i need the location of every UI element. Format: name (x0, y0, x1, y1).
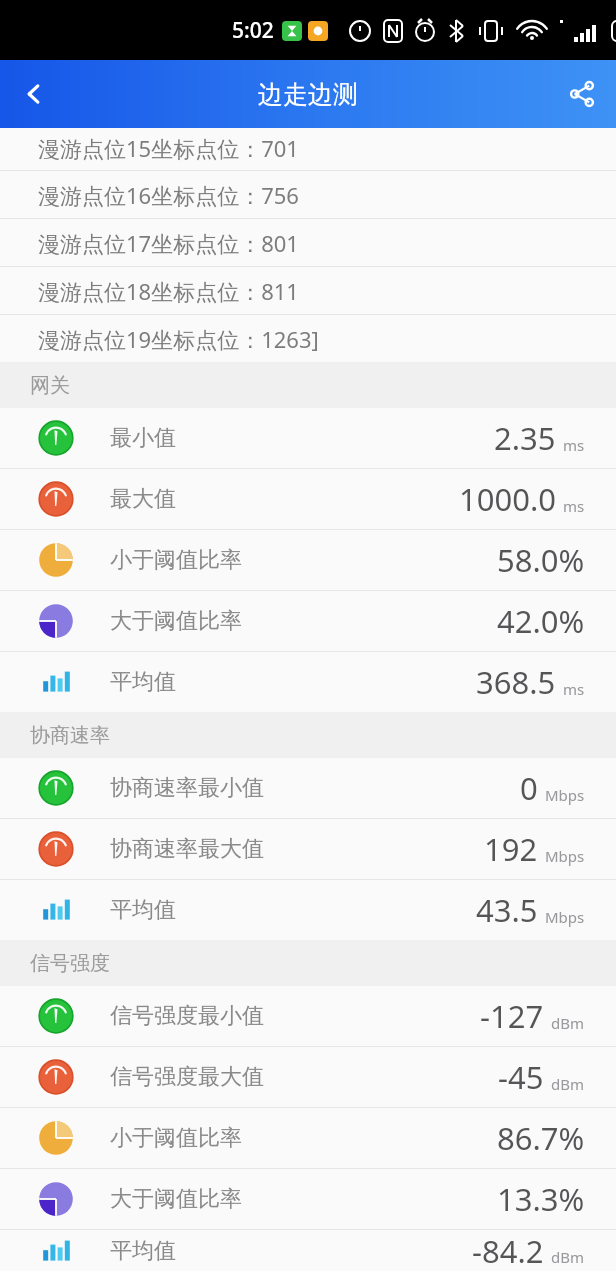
staticText: 平均值 (110, 668, 176, 696)
staticText: -84.2 (472, 1230, 544, 1271)
staticText: 漫游点位17坐标点位：801 (38, 228, 299, 258)
staticText: 大于阈值比率 (110, 1185, 242, 1213)
staticText: 192 (484, 828, 538, 870)
staticText: 1000.0 (459, 478, 556, 520)
staticText: 协商速率 (30, 723, 110, 748)
button[interactable]: Back (0, 60, 68, 128)
staticText: -127 (480, 995, 544, 1037)
button[interactable]: 最小值 (0, 408, 616, 468)
staticText: 86.7% (497, 1117, 585, 1159)
staticText: 最小值 (110, 424, 176, 452)
staticText: 信号强度 (30, 951, 110, 976)
staticText: dBm (551, 1013, 585, 1033)
staticText: 13.3% (497, 1178, 585, 1220)
button[interactable]: 小于阈值比率 (0, 1108, 616, 1168)
button[interactable]: 漫游点位19坐标点位：1263] (0, 315, 616, 362)
staticText: 2.35 (494, 417, 556, 459)
staticText: 368.5 (476, 661, 556, 703)
button[interactable]: 平均值 (0, 880, 616, 940)
staticText: ms (563, 435, 585, 455)
button[interactable]: 漫游点位18坐标点位：811 (0, 267, 616, 314)
staticText: 小于阈值比率 (110, 1124, 242, 1152)
button[interactable]: 协商速率最大值 (0, 819, 616, 879)
staticText: 网关 (30, 373, 70, 398)
staticText: 漫游点位19坐标点位：1263] (38, 324, 319, 354)
staticText: 信号强度最小值 (110, 1002, 264, 1030)
staticText: dBm (551, 1074, 585, 1094)
staticText: 5:02 (232, 16, 274, 45)
staticText: Mbps (545, 785, 585, 805)
staticText: 43.5 (476, 889, 538, 931)
staticText: ms (563, 496, 585, 516)
staticText: Mbps (545, 846, 585, 866)
staticText: 漫游点位18坐标点位：811 (38, 276, 299, 306)
staticText: ms (563, 679, 585, 699)
button[interactable]: 大于阈值比率 (0, 591, 616, 651)
staticText: 58.0% (497, 539, 585, 581)
staticText: 0 (520, 767, 538, 809)
staticText: 42.0% (497, 600, 585, 642)
button[interactable]: 大于阈值比率 (0, 1169, 616, 1229)
staticText: 小于阈值比率 (110, 546, 242, 574)
staticText: dBm (551, 1247, 585, 1267)
button[interactable]: Share (548, 60, 616, 128)
button[interactable]: 协商速率最小值 (0, 758, 616, 818)
button[interactable]: 平均值 (0, 652, 616, 712)
staticText: Mbps (545, 907, 585, 927)
staticText: 协商速率最大值 (110, 835, 264, 863)
button[interactable]: 平均值 (0, 1230, 616, 1271)
staticText: 边走边测 (258, 79, 358, 110)
staticText: 漫游点位15坐标点位：701 (38, 133, 299, 163)
button[interactable]: 信号强度最小值 (0, 986, 616, 1046)
staticText: 平均值 (110, 1237, 176, 1265)
staticText: 最大值 (110, 485, 176, 513)
button[interactable]: 漫游点位17坐标点位：801 (0, 219, 616, 266)
button[interactable]: 漫游点位16坐标点位：756 (0, 171, 616, 218)
staticText: 大于阈值比率 (110, 607, 242, 635)
staticText: -45 (498, 1056, 544, 1098)
staticText: 漫游点位16坐标点位：756 (38, 180, 299, 210)
staticText: 平均值 (110, 896, 176, 924)
button[interactable]: 信号强度最大值 (0, 1047, 616, 1107)
staticText: 信号强度最大值 (110, 1063, 264, 1091)
staticText: 协商速率最小值 (110, 774, 264, 802)
button[interactable]: 小于阈值比率 (0, 530, 616, 590)
button[interactable]: 最大值 (0, 469, 616, 529)
